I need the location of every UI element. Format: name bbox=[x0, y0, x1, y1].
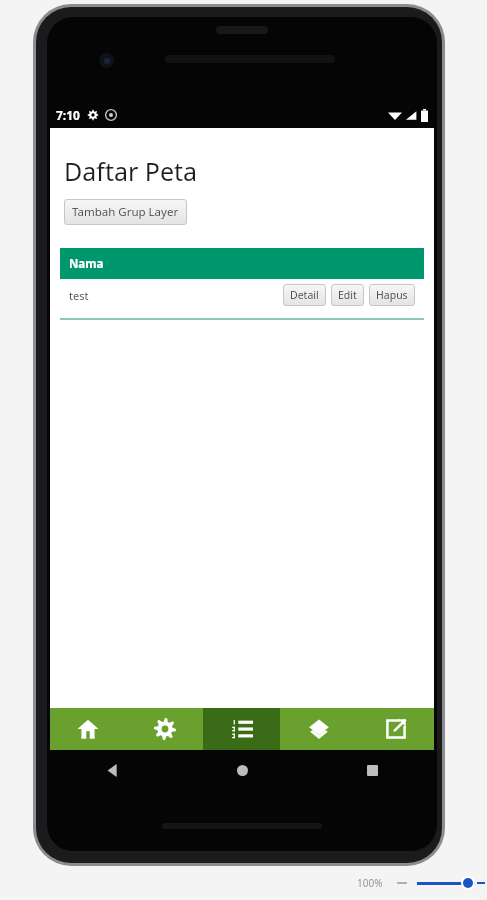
button[interactable]: List bbox=[203, 708, 280, 750]
button[interactable]: Home bbox=[50, 708, 126, 750]
button[interactable]: Detail bbox=[283, 284, 326, 306]
staticText: Hapus bbox=[376, 288, 408, 302]
button[interactable]: Layers bbox=[280, 708, 357, 750]
staticText: 7:10 bbox=[56, 107, 80, 123]
button[interactable]: Open external bbox=[357, 708, 434, 750]
staticText: Tambah Grup Layer bbox=[72, 204, 179, 220]
button[interactable]: Settings bbox=[126, 708, 203, 750]
staticText: Daftar Peta bbox=[64, 154, 198, 188]
staticText: Nama bbox=[69, 256, 104, 272]
staticText: Edit bbox=[338, 288, 357, 302]
button[interactable]: Back bbox=[47, 750, 177, 790]
staticText: Detail bbox=[290, 288, 319, 302]
button[interactable]: Edit bbox=[331, 284, 364, 306]
button[interactable]: Tambah Grup Layer bbox=[64, 199, 187, 225]
button[interactable]: Hapus bbox=[369, 284, 415, 306]
staticText: test bbox=[69, 288, 89, 303]
button[interactable]: Recents bbox=[307, 750, 437, 790]
staticText: 100% bbox=[357, 876, 383, 890]
button[interactable]: Home bbox=[177, 750, 307, 790]
